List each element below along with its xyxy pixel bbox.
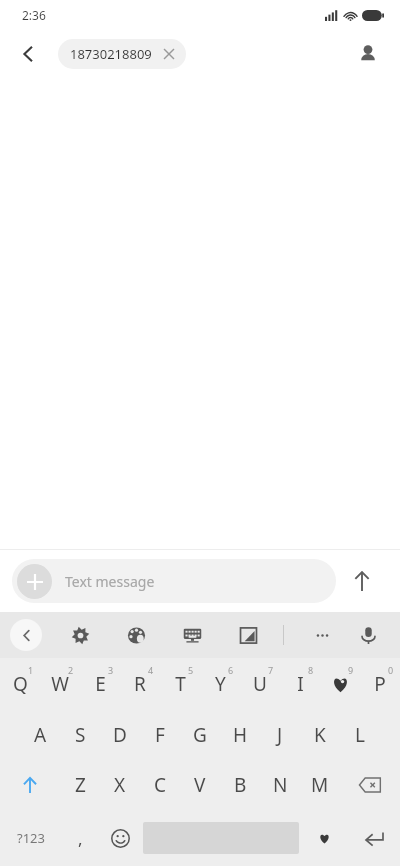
button[interactable]: V <box>180 760 220 810</box>
button[interactable]: Close toolbar <box>10 619 42 651</box>
button[interactable]: X <box>100 760 140 810</box>
staticText: N <box>273 772 288 798</box>
button[interactable]: Voice input <box>350 617 386 653</box>
staticText: 5 <box>188 664 194 676</box>
staticText: P <box>374 671 386 697</box>
button[interactable]: N <box>260 760 300 810</box>
button[interactable]: Add attachment <box>17 564 52 599</box>
button[interactable]: W <box>40 658 80 710</box>
button[interactable]: B <box>220 760 260 810</box>
staticText: Text message <box>65 572 155 591</box>
button[interactable]: K <box>300 710 340 760</box>
button[interactable]: I <box>280 658 320 710</box>
staticText: T <box>175 671 186 697</box>
staticText: X <box>114 772 126 798</box>
button[interactable]: Emoji <box>99 810 141 866</box>
staticText: 9 <box>348 664 354 676</box>
staticText: J <box>277 722 283 748</box>
staticText: 7 <box>268 664 274 676</box>
button[interactable]: Back <box>8 34 48 74</box>
button[interactable]: P <box>360 658 400 710</box>
staticText: G <box>193 722 207 748</box>
staticText: C <box>154 772 167 798</box>
button[interactable]: L <box>340 710 380 760</box>
button[interactable]: Backspace <box>340 760 400 810</box>
button[interactable]: Contacts <box>348 34 388 74</box>
staticText: L <box>355 722 365 748</box>
staticText: 18730218809 <box>70 45 152 63</box>
button[interactable]: C <box>140 760 180 810</box>
staticText: M <box>311 772 329 798</box>
button[interactable]: ?123 <box>0 810 61 866</box>
button[interactable]: T <box>160 658 200 710</box>
button[interactable]: Resize <box>230 617 266 653</box>
button[interactable]: Enter <box>347 810 400 866</box>
staticText: Z <box>75 772 86 798</box>
staticText: D <box>113 722 127 748</box>
button[interactable]: M <box>300 760 340 810</box>
button[interactable]: Settings <box>62 617 98 653</box>
button[interactable]: D <box>100 710 140 760</box>
button[interactable]: Shift <box>0 760 60 810</box>
button[interactable]: H <box>220 710 260 760</box>
staticText: I <box>297 671 304 697</box>
staticText: 2 <box>68 664 74 676</box>
button[interactable]: G <box>180 710 220 760</box>
staticText: 2:36 <box>22 7 46 23</box>
staticText: 4 <box>148 664 154 676</box>
staticText: F <box>155 722 165 748</box>
button[interactable]: Send <box>336 555 388 607</box>
staticText: E <box>95 671 106 697</box>
staticText: V <box>194 772 206 798</box>
button[interactable]: Y <box>200 658 240 710</box>
staticText: 8 <box>308 664 314 676</box>
button[interactable]: Q <box>0 658 40 710</box>
staticText: 6 <box>228 664 234 676</box>
staticText: 1 <box>28 664 34 676</box>
staticText: W <box>51 671 69 697</box>
button[interactable]: 9 <box>320 658 360 710</box>
button[interactable]: 18730218809 <box>58 39 186 69</box>
button[interactable]: A <box>20 710 60 760</box>
button[interactable]: S <box>60 710 100 760</box>
button[interactable]: Remove recipient <box>160 45 178 63</box>
staticText: B <box>234 772 247 798</box>
button[interactable]: , <box>61 810 99 866</box>
staticText: ?123 <box>17 829 45 847</box>
button[interactable]: F <box>140 710 180 760</box>
staticText: H <box>233 722 248 748</box>
button[interactable]: Heart <box>301 810 347 866</box>
staticText: A <box>34 722 47 748</box>
staticText: S <box>75 722 86 748</box>
button[interactable]: More options <box>304 617 340 653</box>
button[interactable]: R <box>120 658 160 710</box>
button[interactable]: U <box>240 658 280 710</box>
staticText: K <box>314 722 326 748</box>
staticText: R <box>134 671 146 697</box>
button[interactable]: Keyboard layout <box>174 617 210 653</box>
staticText: 3 <box>108 664 114 676</box>
button[interactable]: Z <box>60 760 100 810</box>
staticText: U <box>253 671 267 697</box>
staticText: , <box>78 827 83 850</box>
button[interactable]: Themes <box>118 617 154 653</box>
button[interactable]: E <box>80 658 120 710</box>
staticText: Y <box>215 671 226 697</box>
button[interactable]: Add attachment <box>12 559 336 603</box>
staticText: 0 <box>388 664 394 676</box>
button[interactable]: J <box>260 710 300 760</box>
staticText: Q <box>13 671 28 697</box>
